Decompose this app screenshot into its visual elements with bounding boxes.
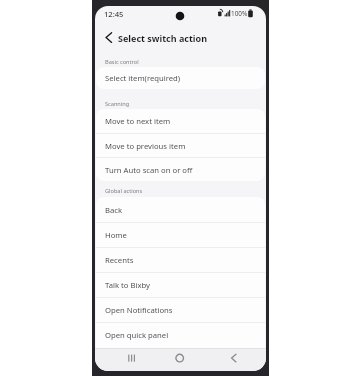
staticText: Open Notifications	[105, 305, 173, 315]
button[interactable]: Recents	[96, 248, 265, 272]
button[interactable]	[169, 350, 191, 368]
button[interactable]: Talk to Bixby	[96, 273, 265, 297]
staticText: 12:45	[104, 9, 124, 19]
button[interactable]	[103, 31, 116, 44]
button[interactable]: Home	[96, 223, 265, 247]
button[interactable]	[223, 350, 245, 368]
staticText: Basic control	[105, 58, 139, 66]
staticText: Scanning	[105, 100, 130, 108]
staticText: Turn Auto scan on or off	[105, 165, 193, 175]
button[interactable]: Select switch action	[118, 31, 228, 44]
button[interactable]: Open quick panel	[96, 323, 265, 347]
button[interactable]: Back	[96, 197, 265, 222]
button[interactable]	[121, 350, 143, 368]
staticText: Back	[105, 205, 123, 215]
staticText: Move to next item	[105, 116, 171, 126]
button[interactable]: Move to next item	[96, 109, 265, 133]
staticText: Talk to Bixby	[105, 280, 151, 290]
staticText: Global actions	[105, 187, 143, 195]
staticText: Recents	[105, 255, 134, 265]
button[interactable]: Turn Auto scan on or off	[96, 158, 265, 181]
button[interactable]: Move to previous item	[96, 134, 265, 157]
staticText: Home	[105, 230, 127, 240]
staticText: 100%	[231, 9, 248, 18]
staticText: Move to previous item	[105, 141, 186, 151]
staticText: Select item(required)	[105, 73, 181, 83]
button[interactable]: Open Notifications	[96, 298, 265, 322]
staticText: Open quick panel	[105, 330, 169, 340]
staticText: Select switch action	[118, 32, 208, 44]
button[interactable]: Select item(required)	[96, 67, 265, 89]
